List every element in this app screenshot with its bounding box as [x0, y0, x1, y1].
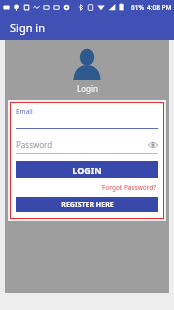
- staticText: REGISTER HERE: [61, 200, 114, 210]
- staticText: Forgot Password?: [102, 183, 157, 192]
- staticText: 4:08 PM: [147, 3, 172, 12]
- button[interactable]: Show password: [147, 139, 158, 150]
- button[interactable]: Forgot Password?: [101, 182, 158, 193]
- staticText: 61%: [131, 3, 144, 12]
- staticText: Password: [16, 139, 147, 150]
- staticText: LOGIN: [72, 164, 102, 176]
- staticText: Login: [77, 83, 98, 94]
- button[interactable]: LOGIN: [16, 161, 158, 178]
- button[interactable]: REGISTER HERE: [16, 197, 158, 212]
- staticText: Email: [16, 107, 33, 116]
- staticText: Sign in: [10, 20, 45, 35]
